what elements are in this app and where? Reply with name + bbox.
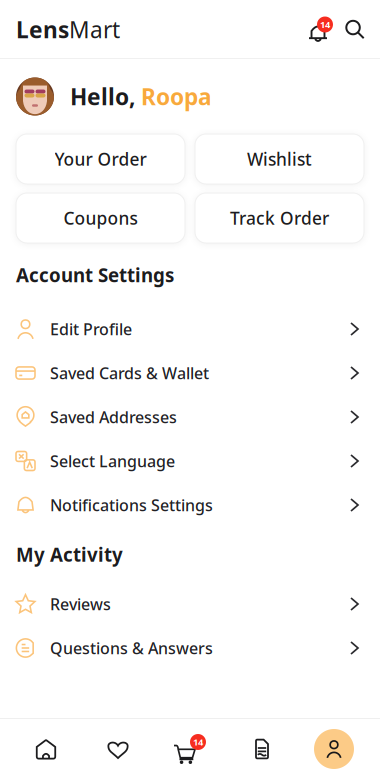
staticText: 14	[320, 18, 330, 31]
button[interactable]: Profile	[298, 718, 370, 780]
staticText: Coupons	[63, 206, 137, 229]
button[interactable]: Your Order	[16, 134, 185, 184]
button[interactable]: Track Order	[195, 193, 364, 243]
button[interactable]: Home	[10, 718, 82, 780]
button[interactable]: Wishlist	[195, 134, 364, 184]
button[interactable]: Coupons	[16, 193, 185, 243]
staticText: Questions & Answers	[50, 637, 213, 659]
staticText: Your Order	[54, 147, 146, 170]
button[interactable]: Saved Cards & Wallet	[0, 351, 380, 395]
staticText: Lens	[16, 14, 69, 44]
button[interactable]: Orders	[226, 718, 298, 780]
button[interactable]: Notifications	[306, 14, 336, 44]
staticText: Reviews	[50, 593, 111, 615]
staticText: Select Language	[50, 450, 175, 472]
staticText: Account Settings	[16, 263, 174, 287]
button[interactable]: Notifications Settings	[0, 483, 380, 527]
staticText: Roopa	[135, 81, 212, 111]
button[interactable]: Wishlist	[82, 718, 154, 780]
staticText: Saved Addresses	[50, 406, 177, 428]
staticText: My Activity	[16, 542, 123, 567]
staticText: Hello,	[70, 81, 135, 111]
button[interactable]: Saved Addresses	[0, 395, 380, 439]
staticText: Wishlist	[247, 147, 312, 170]
button[interactable]: Reviews	[0, 582, 380, 626]
button[interactable]: Questions & Answers	[0, 626, 380, 670]
button[interactable]: Search	[336, 10, 374, 48]
staticText: Mart	[69, 14, 120, 44]
staticText: Saved Cards & Wallet	[50, 362, 209, 384]
staticText: Track Order	[230, 206, 329, 229]
staticText: Edit Profile	[50, 318, 132, 340]
button[interactable]: Select Language	[0, 439, 380, 483]
staticText: Notifications Settings	[50, 494, 213, 516]
button[interactable]: Edit Profile	[0, 307, 380, 351]
staticText: 14	[193, 736, 203, 748]
button[interactable]: Cart	[154, 718, 226, 780]
